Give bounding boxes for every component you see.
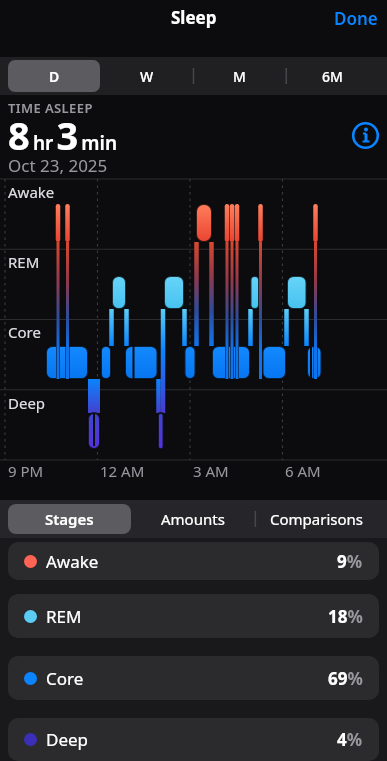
button[interactable]: 6M [286, 60, 379, 92]
staticText: 3 AM [193, 461, 229, 481]
staticText: Awake [8, 182, 55, 202]
staticText: Comparisons [270, 509, 364, 529]
staticText: Deep [46, 728, 89, 751]
button[interactable]: REM [8, 594, 379, 638]
staticText: 69% [328, 667, 363, 690]
button[interactable]: M [193, 60, 286, 92]
staticText: W [140, 67, 154, 86]
staticText: 9% [337, 550, 363, 573]
staticText: REM [8, 252, 40, 272]
button[interactable]: D [8, 60, 100, 92]
button[interactable]: Deep [8, 718, 379, 761]
staticText: Stages [45, 509, 94, 529]
button[interactable]: Stages [8, 504, 131, 534]
button[interactable]: W [100, 60, 193, 92]
staticText: Sleep [171, 6, 217, 29]
staticText: D [49, 67, 60, 86]
staticText: 6 AM [285, 461, 321, 481]
staticText: Oct 23, 2025 [8, 154, 108, 177]
button[interactable]: Comparisons [255, 504, 379, 534]
button[interactable]: Core [8, 656, 379, 700]
staticText: Core [46, 667, 84, 690]
staticText: Core [8, 322, 41, 342]
button[interactable]: Amounts [131, 504, 255, 534]
staticText: Amounts [161, 509, 225, 529]
staticText: 18% [328, 605, 363, 628]
staticText: Done [334, 7, 378, 30]
staticText: Awake [46, 550, 99, 573]
staticText: 12 AM [100, 461, 145, 481]
staticText: 9 PM [8, 461, 44, 481]
button[interactable]: Done [329, 2, 383, 35]
staticText: REM [46, 605, 82, 628]
button[interactable] [352, 122, 379, 149]
staticText: 8 hr 3 min [8, 109, 118, 161]
staticText: 6M [322, 67, 343, 86]
staticText: M [233, 67, 246, 86]
staticText: 4% [337, 728, 363, 751]
button[interactable]: Awake [8, 542, 379, 580]
staticText: Deep [8, 393, 46, 413]
staticText: TIME ASLEEP [8, 99, 93, 117]
